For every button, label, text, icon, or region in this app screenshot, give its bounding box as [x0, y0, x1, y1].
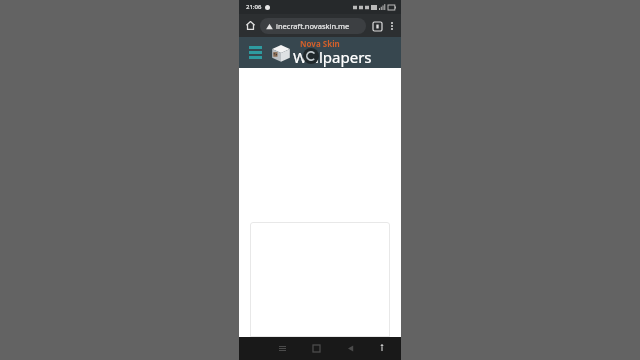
staticText: inecraft.novaskin.me	[276, 21, 350, 31]
staticText: Nova Skin	[300, 38, 340, 49]
button[interactable]: Recents	[265, 337, 299, 360]
button[interactable]: Home page	[242, 17, 259, 34]
button[interactable]: Menu	[247, 44, 264, 61]
button[interactable]: Switch tabs	[369, 18, 385, 34]
button[interactable]	[250, 222, 390, 337]
staticText: Wallpapers	[293, 47, 372, 67]
button[interactable]: Back	[333, 337, 367, 360]
staticText: 21:06	[246, 3, 262, 11]
button[interactable]: Nova Skin home	[269, 41, 293, 65]
button[interactable]: More options	[385, 19, 398, 32]
button[interactable]: inecraft.novaskin.me	[260, 18, 366, 34]
button[interactable]: Home	[299, 337, 333, 360]
button[interactable]: Accessibility	[367, 337, 396, 360]
